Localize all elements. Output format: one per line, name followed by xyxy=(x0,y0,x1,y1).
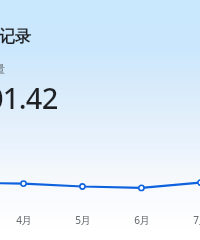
staticText: 体重量 xyxy=(0,62,5,76)
staticText: 4月 xyxy=(16,213,32,227)
staticText: 7月 xyxy=(193,213,200,227)
staticText: 6月 xyxy=(134,213,150,227)
staticText: 101.42 xyxy=(0,78,58,117)
staticText: 记录 xyxy=(0,27,31,47)
staticText: 5月 xyxy=(75,213,91,227)
